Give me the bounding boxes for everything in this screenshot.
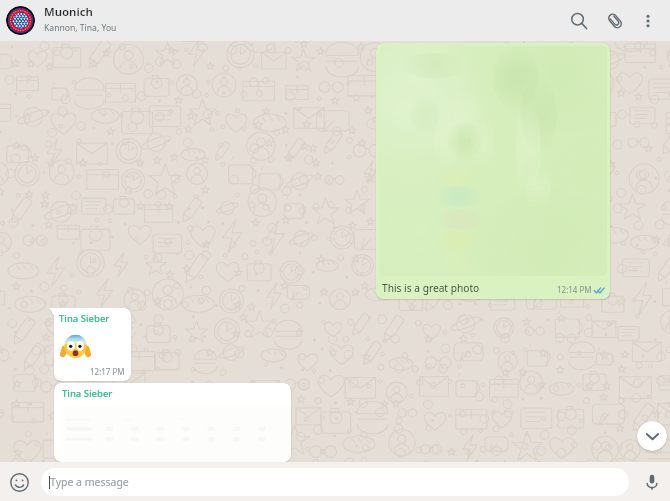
button[interactable]: More options <box>633 6 663 36</box>
button[interactable]: Attach <box>597 3 633 39</box>
staticText: Type a message <box>50 475 129 489</box>
button[interactable]: Scroll to bottom <box>637 421 667 451</box>
button[interactable]: Muonich <box>44 0 561 41</box>
button[interactable]: Tina Sieber <box>54 383 291 462</box>
staticText: Kannon, Tina, You <box>44 22 117 34</box>
button[interactable]: Emoji <box>8 471 30 493</box>
button[interactable]: Tina Sieber <box>49 308 131 381</box>
staticText: 12:14 PM <box>557 284 592 295</box>
staticText: Tina Sieber <box>59 312 110 325</box>
staticText: 12:17 PM <box>90 366 125 377</box>
button[interactable]: Search <box>561 3 597 39</box>
staticText: Tina Sieber <box>62 387 113 400</box>
staticText: This is a great photo <box>382 281 480 295</box>
button[interactable]: This is a great photo <box>376 43 610 299</box>
staticText: Muonich <box>44 4 93 20</box>
button[interactable]: Voice message <box>641 471 663 493</box>
button[interactable]: Type a message <box>41 468 629 496</box>
button[interactable]: Profile picture <box>6 6 35 35</box>
